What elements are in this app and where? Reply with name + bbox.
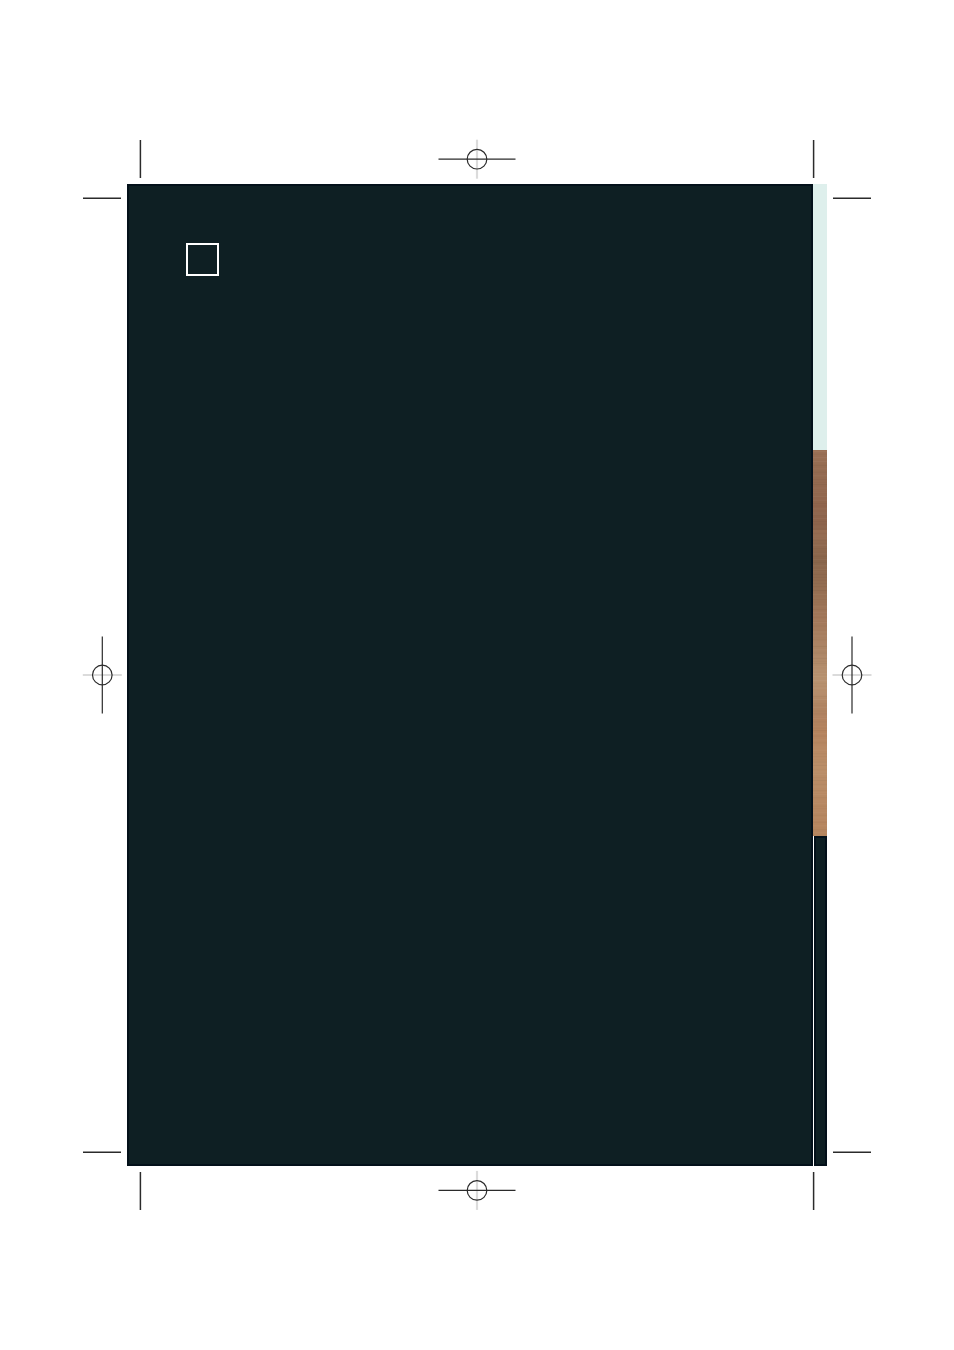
button[interactable]: Open full-bleed interior photograph (127, 184, 827, 1166)
button[interactable]: Picture frame detail (186, 243, 219, 276)
